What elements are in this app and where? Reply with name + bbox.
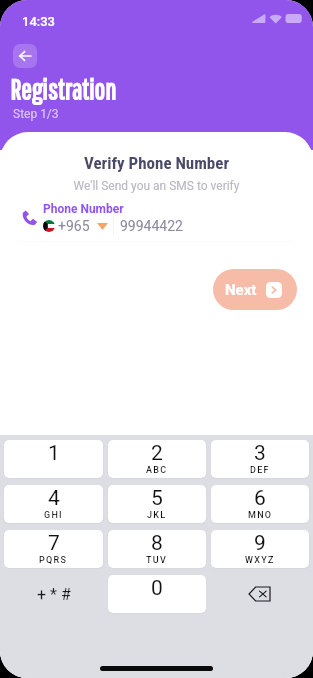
staticText: 99944422 [120,218,183,234]
staticText: 7 [48,531,60,556]
staticText: +965 [58,218,90,234]
button[interactable]: 2 [108,440,206,478]
button[interactable]: 8 [108,530,206,568]
staticText: PQRS [39,555,68,566]
staticText: 4 [48,486,60,511]
button[interactable]: 3 [211,440,309,478]
staticText: 0 [151,576,163,601]
staticText: Step 1/3 [13,107,59,121]
button[interactable]: 5 [108,485,206,523]
staticText: We'll Send you an SMS to verify [0,179,313,193]
button[interactable]: 9 [211,530,309,568]
button[interactable]: 6 [211,485,309,523]
staticText: DEF [250,465,270,476]
staticText: 5 [151,486,163,511]
staticText: Phone Number [43,202,124,216]
staticText: 8 [151,531,163,556]
button[interactable]: 0 [108,575,206,613]
staticText: Next [225,281,257,299]
staticText: Registration [10,73,116,105]
staticText: WXYZ [245,555,275,566]
staticText: 3 [254,441,266,466]
button[interactable]: Next [213,269,297,310]
staticText: 6 [254,486,266,511]
button[interactable]: 1 [4,440,103,478]
staticText: JKL [147,510,167,521]
staticText: 9 [254,531,266,556]
staticText: 1 [48,441,60,466]
staticText: MNO [248,510,273,521]
staticText: TUV [146,555,168,566]
staticText: ABC [146,465,168,476]
button[interactable]: Backspace [211,575,309,613]
staticText: GHI [44,510,63,521]
button[interactable]: 4 [4,485,103,523]
staticText: 14:33 [22,14,55,29]
staticText: Verify Phone Number [0,153,313,173]
button[interactable]: 7 [4,530,103,568]
button[interactable]: + * # [4,575,103,613]
button[interactable]: Back [13,44,37,68]
staticText: 2 [151,441,163,466]
staticText: + * # [37,585,71,604]
